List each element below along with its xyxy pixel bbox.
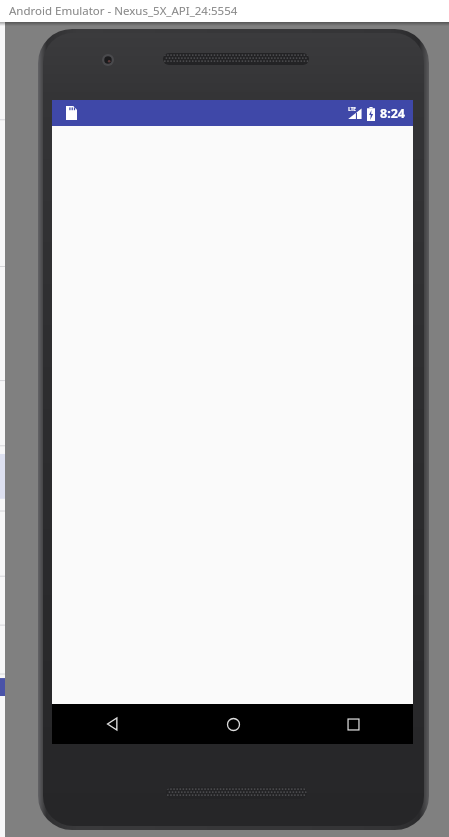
staticText: Android Emulator - Nexus_5X_API_24:5554 (9, 3, 238, 19)
button[interactable]: Recent apps (293, 704, 413, 744)
button[interactable]: Home (173, 704, 293, 744)
button[interactable]: Back (52, 704, 173, 744)
staticText: LTE (348, 106, 356, 112)
staticText: 8:24 (380, 105, 405, 122)
other: SD card (62, 104, 80, 122)
